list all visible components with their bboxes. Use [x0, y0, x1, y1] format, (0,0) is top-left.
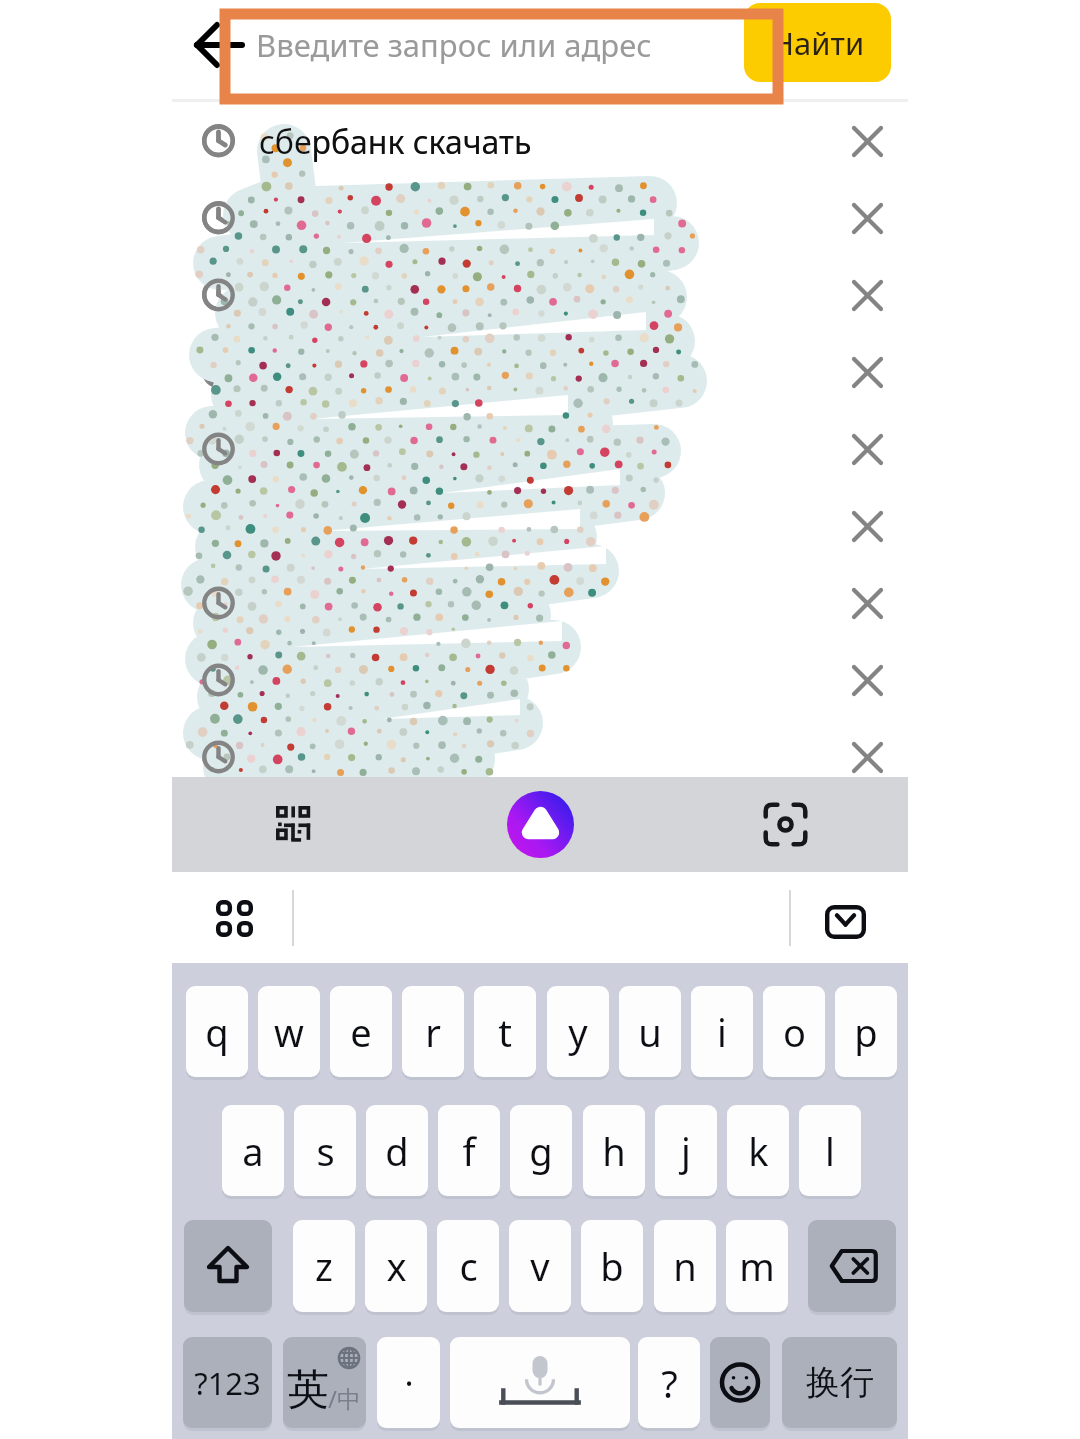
button[interactable]: Back [182, 8, 256, 82]
staticText: e [350, 1006, 372, 1058]
button[interactable]: Remove from history [831, 567, 903, 639]
staticText: v [530, 1240, 550, 1292]
button[interactable]: Hide keyboard [809, 885, 882, 958]
button[interactable]: Remove from history [831, 182, 903, 254]
button[interactable]: y [547, 986, 609, 1077]
button[interactable]: Remove from history [172, 411, 908, 488]
staticText: 换行 [806, 1361, 874, 1404]
button[interactable]: Remove from history [172, 257, 908, 334]
button[interactable]: Remove from history [831, 413, 903, 485]
staticText: j [681, 1125, 691, 1177]
button[interactable]: t [474, 986, 536, 1077]
staticText: h [602, 1125, 626, 1177]
staticText: g [529, 1125, 553, 1177]
staticText: /中 [328, 1382, 361, 1415]
button[interactable]: ?123 [183, 1337, 272, 1428]
button[interactable]: Space [450, 1337, 630, 1428]
staticText: u [638, 1006, 662, 1058]
button[interactable]: e [330, 986, 392, 1077]
button[interactable]: ? [638, 1337, 700, 1428]
button[interactable]: a [222, 1105, 284, 1196]
staticText: i [717, 1006, 727, 1058]
staticText: p [854, 1006, 878, 1058]
staticText: ?123 [194, 1362, 261, 1404]
staticText: l [825, 1125, 835, 1177]
staticText: · [404, 1360, 414, 1406]
staticText: t [498, 1006, 512, 1058]
button[interactable]: Remove from history [831, 105, 903, 177]
staticText: z [315, 1240, 333, 1292]
button[interactable]: Remove from history [172, 719, 908, 796]
button[interactable]: Remove from history [831, 259, 903, 331]
staticText: Введите запрос или адрес [256, 24, 652, 66]
staticText: k [748, 1125, 769, 1177]
button[interactable]: c [437, 1220, 499, 1312]
button[interactable]: o [763, 986, 825, 1077]
button[interactable]: Найти [744, 3, 891, 82]
button[interactable]: q [186, 986, 248, 1077]
button[interactable]: z [293, 1220, 355, 1312]
button[interactable]: Alice voice assistant [502, 786, 578, 862]
staticText: n [673, 1240, 697, 1292]
button[interactable]: Remove from history [172, 565, 908, 642]
button[interactable]: s [294, 1105, 356, 1196]
staticText: r [425, 1006, 441, 1058]
button[interactable]: h [583, 1105, 645, 1196]
button[interactable]: Keyboard menu [200, 884, 269, 953]
staticText: сбербанк скачать [259, 120, 532, 164]
button[interactable]: w [258, 986, 320, 1077]
button[interactable]: n [654, 1220, 716, 1312]
button[interactable]: 换行 [782, 1337, 897, 1428]
staticText: m [739, 1240, 775, 1292]
button[interactable]: u [619, 986, 681, 1077]
button[interactable]: r [402, 986, 464, 1077]
button[interactable]: Remove from history [172, 180, 908, 257]
button[interactable]: Введите запрос или адрес [256, 0, 736, 90]
staticText: ? [661, 1357, 678, 1409]
button[interactable]: Emoji [710, 1337, 770, 1428]
staticText: b [600, 1240, 624, 1292]
button[interactable]: i [691, 986, 753, 1077]
button[interactable]: Remove from history [172, 488, 908, 565]
staticText: s [316, 1125, 335, 1177]
staticText: 英 [287, 1364, 329, 1417]
button[interactable]: k [727, 1105, 789, 1196]
button[interactable]: j [655, 1105, 717, 1196]
staticText: o [783, 1006, 806, 1058]
button[interactable]: Scan QR code [260, 790, 330, 860]
button[interactable]: f [438, 1105, 500, 1196]
button[interactable]: Remove from history [831, 721, 903, 793]
staticText: d [385, 1125, 409, 1177]
button[interactable]: Backspace [808, 1220, 896, 1312]
button[interactable]: v [509, 1220, 571, 1312]
button[interactable]: Remove from history [172, 642, 908, 719]
button[interactable]: Shift [184, 1220, 272, 1312]
button[interactable]: Remove from history [831, 336, 903, 408]
button[interactable]: Switch language [283, 1337, 366, 1428]
button[interactable]: m [726, 1220, 788, 1312]
button[interactable]: x [365, 1220, 427, 1312]
staticText: x [386, 1240, 407, 1292]
button[interactable]: · [377, 1337, 440, 1428]
staticText: f [462, 1125, 476, 1177]
button[interactable]: b [581, 1220, 643, 1312]
staticText: Найти [771, 22, 865, 64]
button[interactable]: Remove from history [172, 334, 908, 411]
staticText: w [274, 1006, 304, 1058]
button[interactable]: Remove from history [831, 490, 903, 562]
staticText: c [459, 1240, 478, 1292]
button[interactable]: Remove from history [831, 644, 903, 716]
staticText: сбербанк скачать [259, 120, 532, 164]
staticText: y [568, 1006, 588, 1058]
staticText: q [205, 1006, 229, 1058]
button[interactable]: сбербанк скачать [172, 103, 908, 180]
button[interactable]: d [366, 1105, 428, 1196]
button[interactable]: p [835, 986, 897, 1077]
button[interactable]: g [510, 1105, 572, 1196]
button[interactable]: Visual search [750, 789, 820, 859]
button[interactable]: l [799, 1105, 861, 1196]
staticText: a [242, 1125, 264, 1177]
